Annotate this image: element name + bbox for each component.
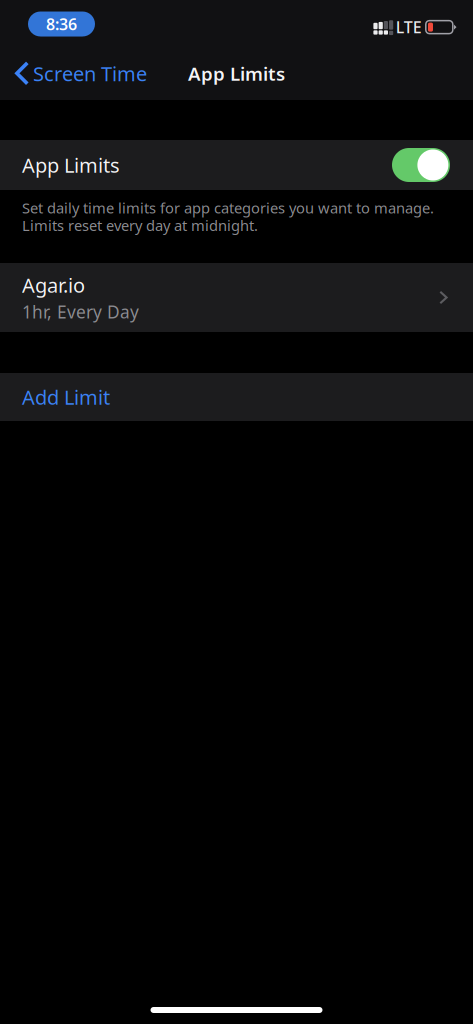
staticText: 1hr, Every Day xyxy=(22,300,139,323)
staticText: Set daily time limits for app categories… xyxy=(22,198,434,217)
staticText: LTE xyxy=(396,16,422,38)
button[interactable]: Agar.io xyxy=(0,263,473,332)
staticText: Limits reset every day at midnight. xyxy=(22,215,258,235)
staticText: App Limits xyxy=(188,61,285,86)
staticText: 8:36 xyxy=(46,13,77,35)
button[interactable]: Screen Time xyxy=(0,53,147,94)
staticText: Add Limit xyxy=(22,384,110,410)
staticText: App Limits xyxy=(22,152,120,178)
button[interactable]: Add Limit xyxy=(0,373,473,421)
staticText: Agar.io xyxy=(22,272,85,298)
button[interactable]: App Limits xyxy=(0,140,473,190)
staticText: Screen Time xyxy=(33,60,147,87)
